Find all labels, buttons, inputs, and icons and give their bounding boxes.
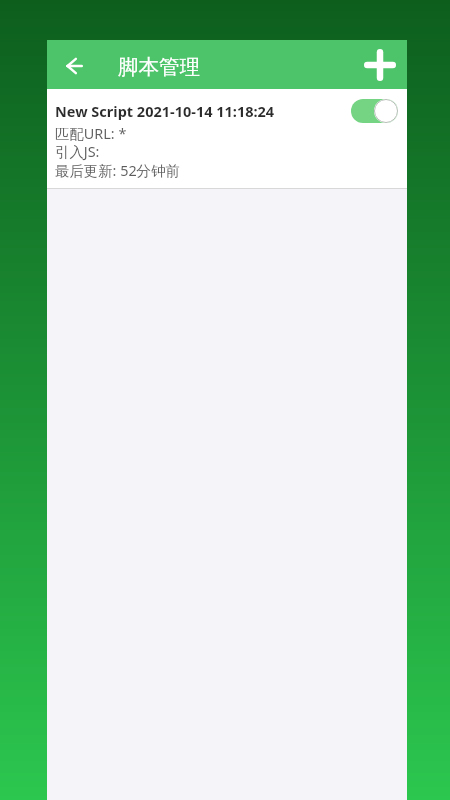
button[interactable]: Back: [50, 42, 98, 90]
button[interactable]: Add script: [356, 41, 404, 89]
button[interactable]: Enable script: [351, 99, 398, 123]
staticText: New Script 2021-10-14 11:18:24: [55, 101, 275, 121]
staticText: 脚本管理: [118, 54, 200, 80]
staticText: 引入JS:: [55, 142, 100, 162]
staticText: 匹配URL: *: [55, 124, 127, 144]
staticText: 最后更新: 52分钟前: [55, 161, 180, 181]
button[interactable]: New Script 2021-10-14 11:18:24: [47, 89, 407, 189]
